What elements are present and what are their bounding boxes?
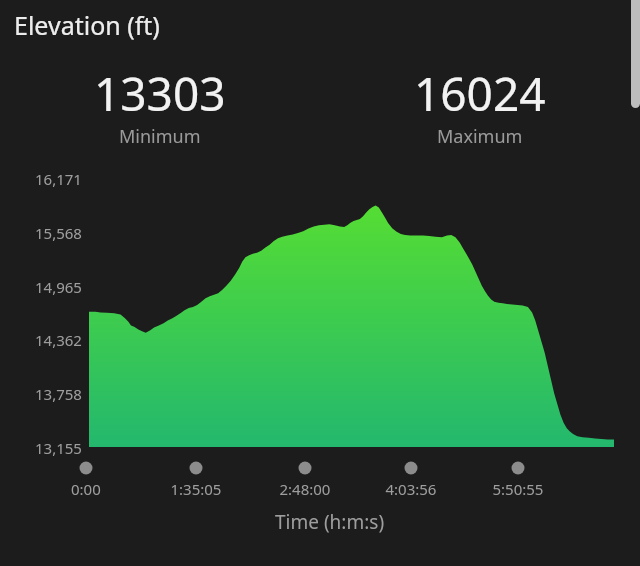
button[interactable]: Elevation chart <box>0 0 640 566</box>
